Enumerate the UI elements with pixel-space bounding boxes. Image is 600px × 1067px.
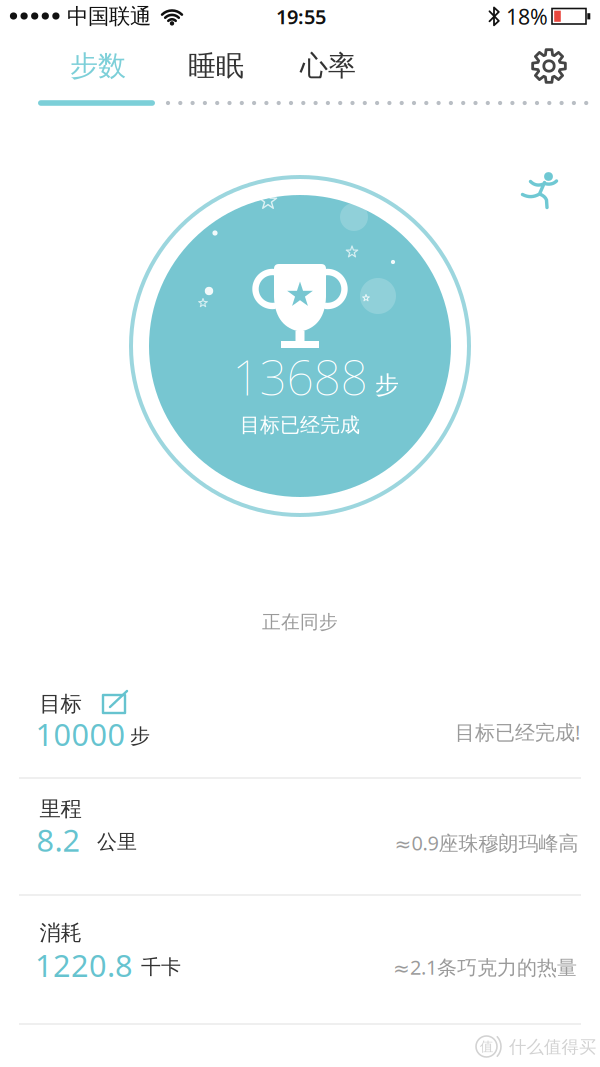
staticText: 步数: [70, 49, 126, 83]
staticText: 8.2: [36, 819, 80, 860]
staticText: 步: [375, 370, 399, 400]
staticText: 18%: [506, 2, 548, 31]
staticText: 目标已经完成: [240, 413, 360, 437]
staticText: 里程: [39, 796, 81, 822]
button[interactable]: 目标: [0, 665, 600, 778]
staticText: 千卡: [141, 955, 181, 979]
button[interactable]: 心率: [276, 44, 380, 88]
staticText: 正在同步: [262, 610, 338, 633]
staticText: 10000: [35, 714, 125, 754]
button[interactable]: 里程: [0, 779, 600, 895]
staticText: ≈0.9座珠穆朗玛峰高: [394, 829, 578, 856]
staticText: 目标: [39, 691, 81, 717]
button[interactable]: 消耗: [0, 896, 600, 1024]
staticText: 什么值得买: [509, 1036, 596, 1058]
button[interactable]: 设置: [527, 44, 571, 88]
staticText: 心率: [300, 49, 356, 83]
button[interactable]: 编辑目标: [97, 687, 131, 721]
button[interactable]: 睡眠: [164, 44, 268, 88]
staticText: 19:55: [276, 3, 326, 30]
button[interactable]: 步数: [46, 44, 150, 88]
staticText: 消耗: [39, 920, 81, 946]
staticText: 公里: [97, 829, 137, 854]
staticText: 1220.8: [35, 945, 133, 985]
staticText: 目标已经完成!: [455, 719, 580, 745]
staticText: 步: [130, 724, 150, 748]
staticText: 睡眠: [188, 49, 244, 83]
staticText: 中国联通: [67, 3, 151, 30]
staticText: ≈2.1条巧克力的热量: [393, 954, 577, 980]
staticText: 值: [480, 1038, 493, 1055]
staticText: 13688: [232, 345, 367, 409]
